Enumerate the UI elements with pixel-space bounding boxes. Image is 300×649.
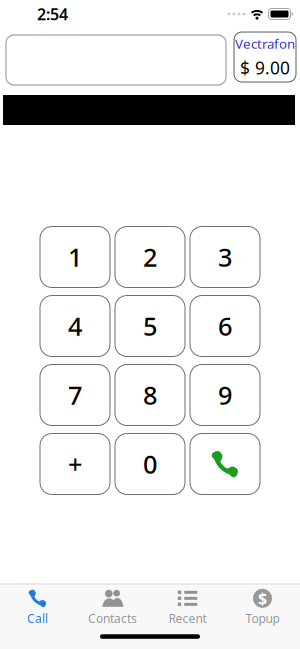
button[interactable]: Call [0, 589, 75, 626]
staticText: 8 [143, 378, 157, 412]
button[interactable]: $ [225, 589, 300, 626]
staticText: 9 [218, 378, 232, 412]
button[interactable]: 3 [190, 226, 260, 287]
button[interactable]: + [40, 433, 110, 494]
button[interactable]: 2 [115, 226, 185, 287]
button[interactable]: Recent [150, 589, 225, 626]
button[interactable]: 6 [190, 295, 260, 356]
button[interactable]: 1 [40, 226, 110, 287]
staticText: $ 9.00 [240, 56, 290, 79]
button[interactable]: 0 [115, 433, 185, 494]
staticText: 1 [68, 240, 82, 274]
staticText: 7 [68, 378, 82, 412]
staticText: Topup [245, 610, 279, 626]
staticText: Call [27, 610, 48, 626]
button[interactable]: 8 [115, 364, 185, 425]
staticText: 5 [143, 309, 157, 343]
button[interactable]: Call [190, 433, 260, 494]
staticText: Recent [168, 610, 206, 626]
button[interactable]: 7 [40, 364, 110, 425]
staticText: $ [258, 588, 267, 609]
staticText: 0 [143, 447, 157, 481]
button[interactable]: 4 [40, 295, 110, 356]
staticText: 4 [68, 309, 82, 343]
staticText: Contacts [88, 610, 137, 626]
button[interactable]: 9 [190, 364, 260, 425]
staticText: 6 [218, 309, 232, 343]
staticText: + [68, 447, 82, 481]
button[interactable]: Vectrafon [234, 32, 296, 82]
staticText: Vectrafon [235, 35, 295, 52]
button[interactable]: Contacts [75, 589, 150, 626]
button[interactable]: 5 [115, 295, 185, 356]
staticText: 3 [218, 240, 232, 274]
staticText: 2 [143, 240, 157, 274]
staticText: 2:54 [37, 3, 68, 25]
